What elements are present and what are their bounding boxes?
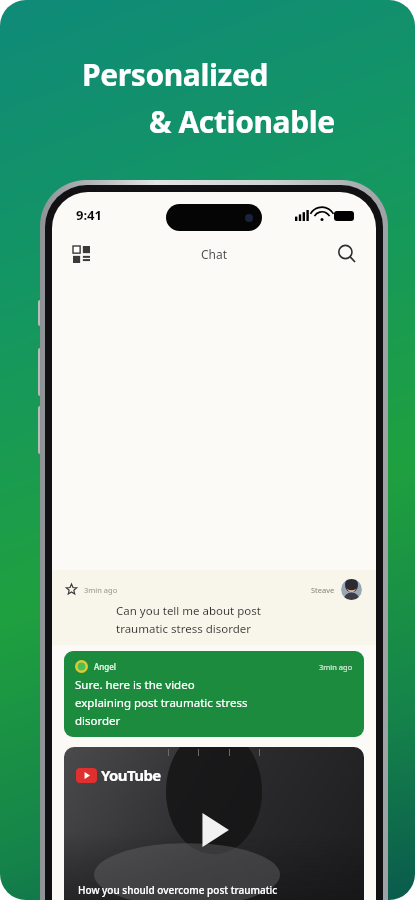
- staticText: Chat: [201, 246, 228, 262]
- staticText: Sure. here is the video explaining post …: [75, 677, 248, 728]
- staticText: & Actionable: [149, 101, 335, 142]
- staticText: Steave: [311, 585, 335, 595]
- staticText: How you should overcome post traumatic s…: [78, 883, 278, 900]
- staticText: YouTube: [101, 765, 161, 785]
- button[interactable]: Search: [332, 239, 362, 269]
- button[interactable]: Menu: [66, 239, 96, 269]
- button[interactable]: Play video: [64, 747, 364, 900]
- staticText: 3min ago: [319, 662, 353, 672]
- button[interactable]: Angel: [64, 651, 364, 737]
- button[interactable]: 3min ago: [52, 570, 376, 645]
- staticText: Angel: [94, 661, 116, 672]
- staticText: Personalized: [82, 54, 268, 95]
- staticText: Can you tell me about post traumatic str…: [116, 603, 332, 636]
- staticText: 9:41: [76, 206, 102, 224]
- staticText: 3min ago: [84, 585, 118, 595]
